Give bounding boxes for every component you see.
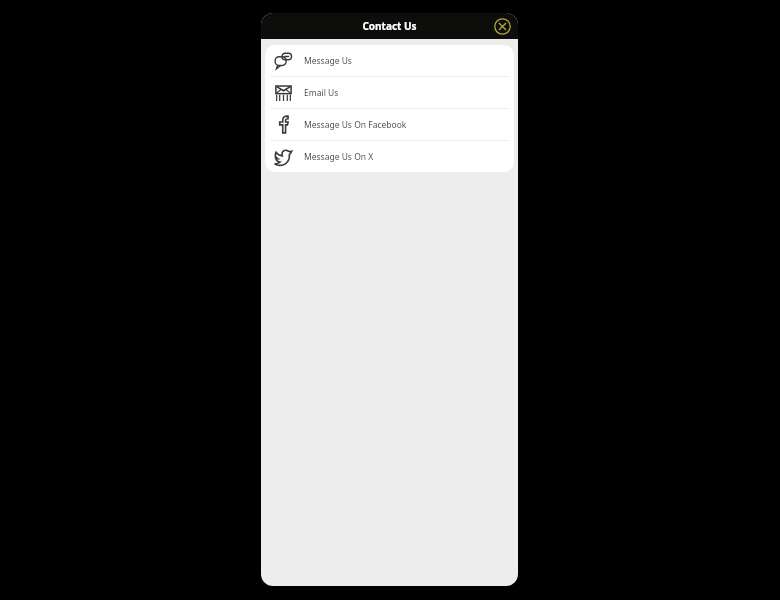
staticText: Contact Us — [261, 19, 518, 33]
staticText: Email Us — [304, 87, 339, 99]
button[interactable]: Message Us — [265, 45, 514, 76]
staticText: Message Us On Facebook — [304, 119, 407, 131]
button[interactable]: Message Us On Facebook — [265, 109, 514, 140]
staticText: Message Us On X — [304, 151, 374, 163]
button[interactable]: Close — [492, 16, 512, 36]
button[interactable]: Message Us On X — [265, 141, 514, 172]
staticText: Message Us — [304, 55, 352, 67]
button[interactable]: Email Us — [265, 77, 514, 108]
